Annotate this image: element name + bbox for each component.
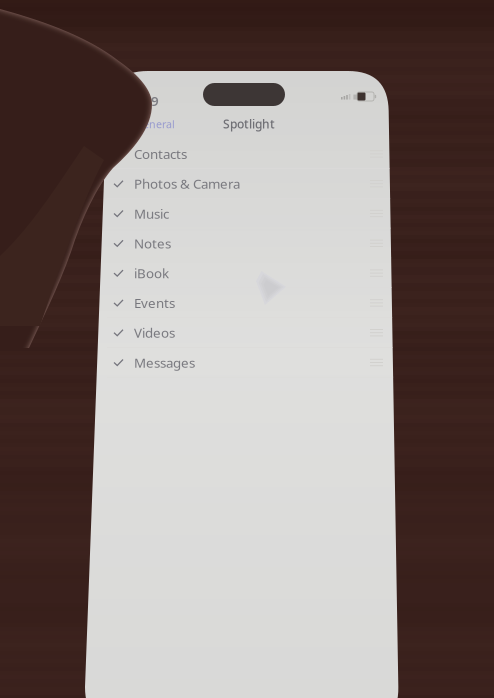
button[interactable]: Contacts <box>85 139 399 169</box>
button[interactable]: iBook <box>85 258 399 288</box>
staticText: Spotlight <box>223 116 275 132</box>
staticText: Contacts <box>134 145 187 163</box>
button[interactable]: Music <box>85 199 399 228</box>
staticText: Messages <box>134 354 195 371</box>
staticText: Events <box>134 294 175 312</box>
button[interactable]: Messages <box>85 348 399 377</box>
staticText: Photos & Camera <box>134 175 240 192</box>
staticText: General <box>135 117 175 131</box>
button[interactable]: General <box>125 113 179 135</box>
button[interactable]: Events <box>85 288 399 318</box>
staticText: Music <box>134 205 169 222</box>
staticText: iBook <box>134 264 169 282</box>
staticText: 9:29 <box>131 92 159 110</box>
button[interactable]: Photos & Camera <box>85 169 399 199</box>
button[interactable]: Notes <box>85 228 399 258</box>
staticText: Videos <box>134 324 175 341</box>
button[interactable]: Videos <box>85 318 399 348</box>
staticText: Notes <box>134 234 171 252</box>
